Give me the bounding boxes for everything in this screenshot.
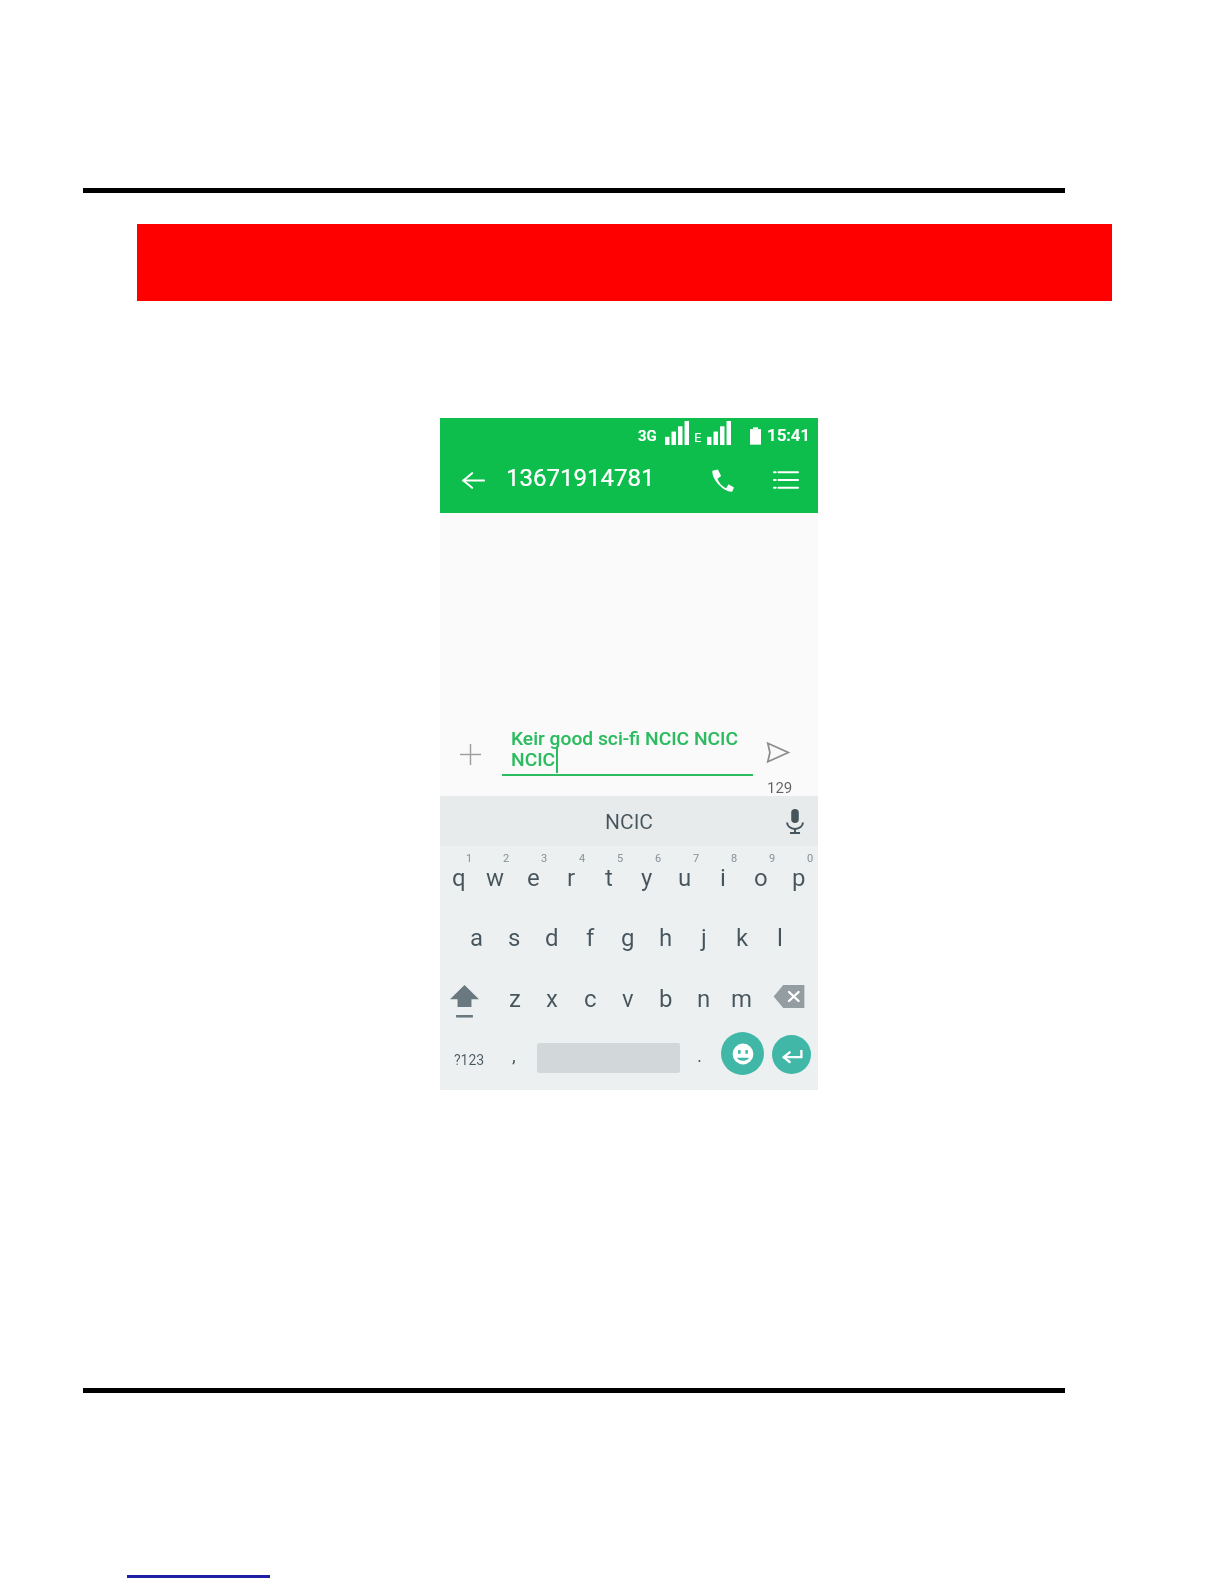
staticText: t — [605, 864, 613, 892]
button[interactable]: NCIC — [569, 796, 689, 846]
staticText: z — [509, 985, 521, 1013]
button[interactable]: a — [458, 907, 495, 968]
staticText: 3 — [541, 852, 548, 865]
staticText: 2 — [503, 852, 510, 865]
button[interactable]: h — [647, 907, 685, 968]
button[interactable]: 2 — [477, 846, 514, 907]
staticText: l — [777, 924, 783, 952]
staticText: 1 — [466, 852, 473, 865]
staticText: w — [486, 864, 505, 892]
staticText: E — [694, 430, 702, 445]
button[interactable]: ?123 — [446, 1037, 492, 1083]
staticText: v — [622, 985, 634, 1013]
button[interactable]: Send — [760, 735, 794, 769]
button[interactable]: 9 — [742, 846, 780, 907]
button[interactable]: . — [685, 1037, 715, 1083]
staticText: 6 — [655, 852, 662, 865]
staticText: 0 — [807, 852, 814, 865]
button[interactable]: , — [497, 1037, 531, 1083]
staticText: o — [754, 864, 768, 892]
button[interactable]: Call — [704, 462, 740, 498]
staticText: 4 — [579, 852, 586, 865]
staticText: s — [508, 924, 521, 952]
button[interactable]: f — [571, 907, 609, 968]
button[interactable]: Add attachment — [454, 738, 486, 770]
staticText: f — [586, 924, 595, 952]
staticText: g — [621, 924, 635, 952]
staticText: x — [546, 985, 558, 1013]
button[interactable]: l — [761, 907, 799, 968]
button[interactable]: 7 — [666, 846, 704, 907]
button[interactable]: Shift — [440, 968, 496, 1029]
staticText: q — [452, 864, 466, 892]
staticText: u — [678, 864, 692, 892]
button[interactable]: Enter — [767, 1030, 815, 1078]
staticText: k — [736, 924, 749, 952]
button[interactable]: j — [685, 907, 723, 968]
staticText: e — [527, 864, 540, 892]
button[interactable]: 8 — [704, 846, 742, 907]
staticText: d — [545, 924, 559, 952]
staticText: NCIC — [605, 810, 654, 835]
button[interactable]: s — [495, 907, 533, 968]
staticText: 129 — [767, 779, 793, 797]
staticText: p — [792, 864, 806, 892]
staticText: 13671914781 — [506, 464, 655, 492]
staticText: 7 — [693, 852, 700, 865]
staticText: m — [731, 985, 753, 1013]
button[interactable]: 0 — [780, 846, 818, 907]
button[interactable]: Emoji — [718, 1029, 766, 1077]
button[interactable]: k — [723, 907, 761, 968]
button[interactable]: n — [685, 968, 723, 1029]
staticText: 9 — [769, 852, 776, 865]
staticText: c — [584, 985, 597, 1013]
staticText: 8 — [731, 852, 738, 865]
staticText: j — [701, 924, 707, 952]
staticText: n — [697, 985, 711, 1013]
staticText: . — [697, 1044, 703, 1066]
button[interactable]: g — [609, 907, 647, 968]
staticText: Keir good sci-fi NCIC NCIC NCIC — [511, 727, 743, 771]
button[interactable]: d — [533, 907, 571, 968]
button[interactable]: x — [533, 968, 571, 1029]
button[interactable]: z — [496, 968, 533, 1029]
staticText: h — [659, 924, 673, 952]
button[interactable]: 6 — [628, 846, 666, 907]
staticText: ?123 — [454, 1052, 485, 1068]
staticText: 3G — [638, 427, 657, 445]
staticText: , — [512, 1044, 516, 1066]
staticText: 15:41 — [767, 425, 811, 445]
button[interactable]: 1 — [440, 846, 477, 907]
staticText: r — [567, 864, 576, 892]
button[interactable]: Backspace — [761, 968, 818, 1029]
button[interactable]: Menu — [767, 462, 803, 498]
button[interactable]: Voice input — [778, 804, 812, 838]
staticText: a — [470, 924, 484, 952]
button[interactable]: 4 — [552, 846, 590, 907]
button[interactable]: Back — [455, 462, 491, 498]
staticText: b — [659, 985, 673, 1013]
staticText: y — [641, 864, 653, 892]
button[interactable]: m — [723, 968, 761, 1029]
button[interactable]: c — [571, 968, 609, 1029]
button[interactable]: Space — [534, 1033, 683, 1085]
button[interactable]: b — [647, 968, 685, 1029]
staticText: 5 — [617, 852, 624, 865]
staticText: i — [720, 864, 726, 892]
button[interactable]: 5 — [590, 846, 628, 907]
button[interactable]: v — [609, 968, 647, 1029]
button[interactable]: 3 — [514, 846, 552, 907]
